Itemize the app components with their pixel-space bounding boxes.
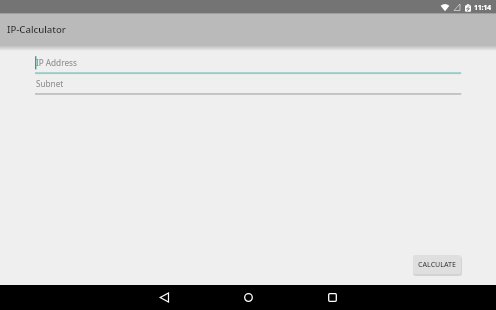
staticText: IP Address bbox=[36, 57, 77, 68]
staticText: IP-Calculator bbox=[7, 23, 66, 36]
button[interactable]: CALCULATE bbox=[413, 255, 461, 274]
button[interactable] bbox=[35, 75, 461, 95]
staticText: CALCULATE bbox=[418, 260, 456, 270]
button[interactable] bbox=[144, 285, 184, 310]
staticText: 11:14 bbox=[474, 2, 491, 12]
button[interactable] bbox=[312, 285, 352, 310]
button[interactable] bbox=[228, 285, 268, 310]
button[interactable] bbox=[35, 53, 461, 74]
staticText: Subnet bbox=[36, 78, 64, 89]
